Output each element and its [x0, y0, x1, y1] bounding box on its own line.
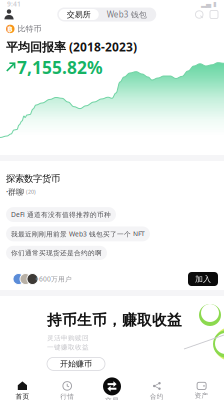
staticText: 探索数字货币 [6, 173, 60, 184]
staticText: 一键赚取收益 [47, 343, 89, 351]
button[interactable]: Scan [210, 10, 218, 18]
staticText: 7,155.82% [17, 56, 103, 79]
button[interactable]: 交易 [90, 377, 134, 400]
button[interactable]: Web3 钱包 [99, 9, 155, 20]
button[interactable]: 合约 [134, 381, 179, 400]
button[interactable]: 资产 [179, 382, 224, 400]
button[interactable]: 交易所 [59, 9, 99, 20]
staticText: ▂▄ ▮ [201, 0, 217, 8]
button[interactable]: Account [0, 7, 18, 22]
button[interactable]: 加入 [188, 272, 218, 286]
staticText: 9:41 [7, 0, 21, 8]
staticText: 加入 [195, 274, 211, 284]
staticText: 合约 [150, 392, 164, 400]
staticText: (20) [26, 188, 36, 195]
staticText: 平均回报率 (2018-2023) [6, 39, 137, 55]
staticText: ·群聊 [6, 186, 24, 197]
staticText: 资产 [195, 391, 209, 400]
staticText: 行情 [60, 392, 74, 400]
staticText: DeFi 通道有没有值得推荐的币种 [11, 210, 111, 219]
button[interactable]: 行情 [45, 381, 90, 400]
button[interactable]: Search [195, 11, 203, 18]
staticText: 比特币 [17, 24, 41, 34]
staticText: ฿ [7, 24, 13, 33]
button[interactable]: 开始赚币 [47, 357, 105, 370]
staticText: 交易 [105, 396, 119, 400]
staticText: 交易所 [67, 10, 91, 19]
button[interactable]: 首页 [0, 381, 45, 400]
staticText: Web3 钱包 [107, 9, 147, 20]
staticText: 持币生币，赚取收益 [47, 311, 182, 329]
staticText: 我最近刚刚用前景 Web3 钱包买了一个 NFT [11, 229, 145, 238]
staticText: 你们通常买现货还是合约的啊 [11, 249, 102, 257]
staticText: 开始赚币 [60, 359, 92, 369]
staticText: 灵活申购赎回 [47, 334, 89, 342]
staticText: +600万用户 [35, 275, 72, 283]
staticText: 首页 [15, 392, 29, 400]
